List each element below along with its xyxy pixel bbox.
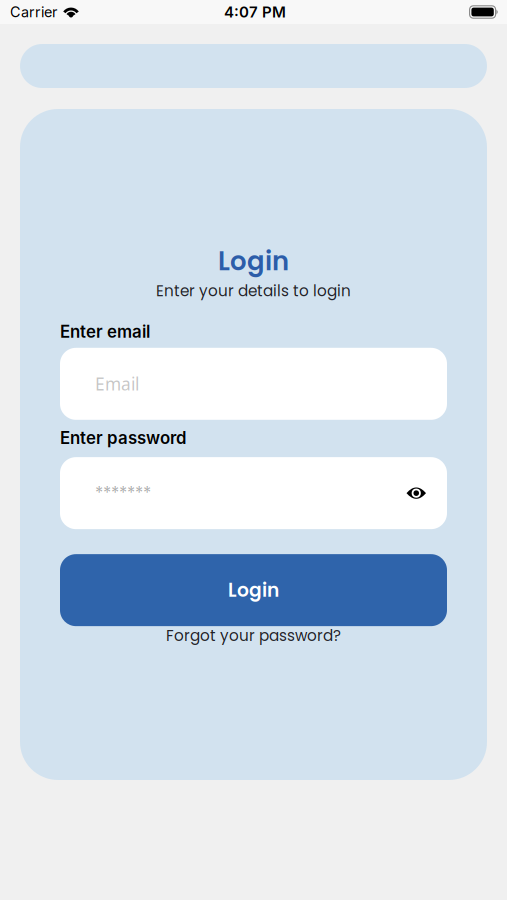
staticText: ******* <box>95 481 151 505</box>
staticText: Forgot your password? <box>166 625 341 646</box>
staticText: Carrier <box>10 3 57 21</box>
button[interactable]: Forgot your password? <box>166 625 341 646</box>
staticText: Enter your details to login <box>156 280 351 301</box>
staticText: Email <box>95 372 139 395</box>
staticText: Login <box>228 577 279 603</box>
button[interactable]: Enter password <box>60 457 447 529</box>
staticText: 4:07 PM <box>224 3 286 21</box>
staticText: Login <box>218 243 289 279</box>
staticText: Enter email <box>60 321 150 342</box>
button[interactable]: Enter email <box>60 348 447 420</box>
staticText: Enter password <box>60 428 186 448</box>
button[interactable]: Login <box>60 554 447 626</box>
button[interactable]: Show password <box>406 487 426 499</box>
